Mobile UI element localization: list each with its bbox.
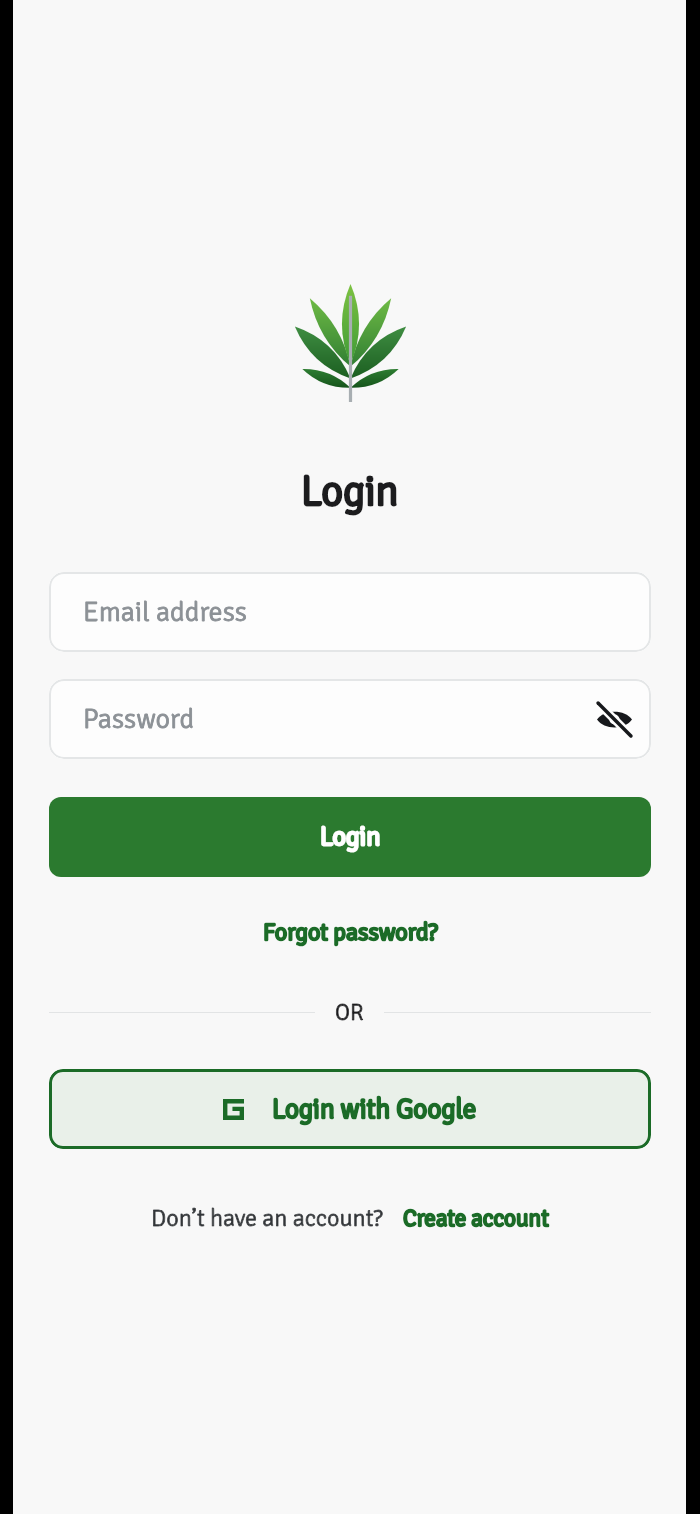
button[interactable]: Login with Google: [49, 1069, 651, 1149]
staticText: Don’t have an account?: [151, 1203, 383, 1233]
staticText: Login: [320, 821, 381, 853]
staticText: Login with Google: [272, 1093, 477, 1126]
staticText: Password: [83, 702, 195, 736]
button[interactable]: Show password: [592, 697, 636, 741]
button[interactable]: Email address: [49, 572, 651, 652]
staticText: OR: [335, 998, 364, 1026]
staticText: Create account: [403, 1204, 549, 1232]
staticText: Don’t have an account?: [151, 1203, 383, 1233]
staticText: Login: [301, 466, 399, 518]
button[interactable]: Login: [49, 797, 651, 877]
staticText: OR: [335, 998, 364, 1026]
staticText: Login: [301, 466, 399, 518]
staticText: Email address: [83, 595, 247, 629]
staticText: Create account: [403, 1204, 549, 1232]
button[interactable]: Forgot password?: [255, 913, 446, 951]
staticText: Login with Google: [272, 1093, 477, 1126]
staticText: Forgot password?: [263, 917, 438, 947]
staticText: Login: [320, 821, 381, 853]
staticText: Forgot password?: [263, 917, 438, 947]
staticText: Email address: [83, 595, 247, 629]
staticText: Password: [83, 702, 195, 736]
button[interactable]: Create account: [403, 1204, 549, 1232]
button[interactable]: Password: [49, 679, 651, 759]
